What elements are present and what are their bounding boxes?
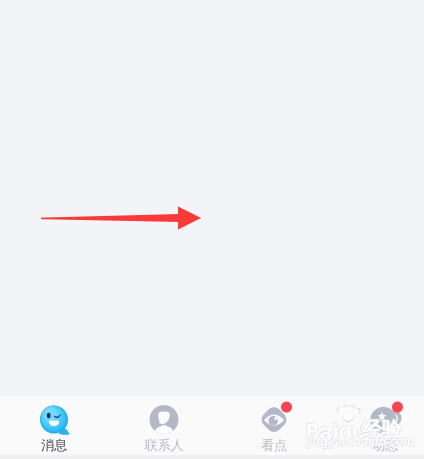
staticText: 联系人 xyxy=(144,437,183,453)
staticText: 经验 xyxy=(362,418,402,442)
staticText: Baidu xyxy=(305,416,365,445)
button[interactable]: 联系人 xyxy=(127,392,201,459)
staticText: 看点 xyxy=(261,437,287,453)
staticText: jingyan.baidu.com xyxy=(307,434,416,450)
button[interactable]: 消息 xyxy=(17,392,91,459)
button[interactable]: 动态 xyxy=(348,392,422,459)
staticText: jingyan.baidu.com xyxy=(306,433,415,449)
staticText: 经验 xyxy=(361,416,401,441)
staticText: Baidu xyxy=(306,417,366,446)
staticText: 经验 xyxy=(361,417,401,442)
staticText: 消息 xyxy=(41,437,67,453)
staticText: 动态 xyxy=(372,437,398,453)
button[interactable]: 看点 xyxy=(237,392,311,459)
staticText: jingyan.baidu.com xyxy=(305,432,414,448)
staticText: Baidu xyxy=(305,416,365,444)
